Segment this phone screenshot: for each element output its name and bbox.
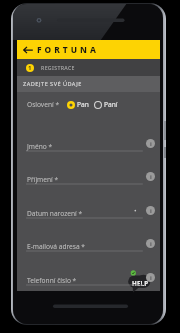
staticText: Telefonní číslo * [27,276,77,285]
button[interactable]: Jméno * [17,127,160,152]
button[interactable]: Paní [94,100,118,109]
staticText: E-mailová adresa * [27,242,85,251]
button[interactable]: Info [146,206,155,215]
staticText: Paní [104,100,118,109]
staticText: Pan [77,100,89,109]
button[interactable]: Pan [67,100,89,109]
button[interactable]: Info [146,239,155,248]
button[interactable]: Info [146,172,155,181]
button[interactable]: Příjmení * [17,160,160,185]
button[interactable]: Datum narození * [17,194,160,219]
staticText: i [150,140,152,148]
staticText: Datum narození * [27,209,83,218]
staticText: Příjmení * [27,175,59,184]
button[interactable]: Telefonní číslo * [17,261,160,286]
staticText: i [150,173,152,181]
button[interactable]: Back [22,44,34,56]
button[interactable]: E-mailová adresa * [17,227,160,252]
staticText: REGISTRACE [41,64,75,71]
button[interactable]: 1 [17,59,160,76]
staticText: i [150,240,152,248]
staticText: HELP [132,279,149,287]
staticText: 1 [28,64,32,72]
staticText: Oslovení * [27,100,60,109]
staticText: i [150,274,152,282]
staticText: ZADEJTE SVÉ ÚDAJE [23,80,82,88]
staticText: Jméno * [27,142,53,151]
button[interactable]: HELP [126,269,152,295]
staticText: i [150,207,152,215]
button[interactable]: Info [146,139,155,148]
staticText: FORTUNA [37,44,99,55]
button[interactable]: Info [146,273,155,282]
